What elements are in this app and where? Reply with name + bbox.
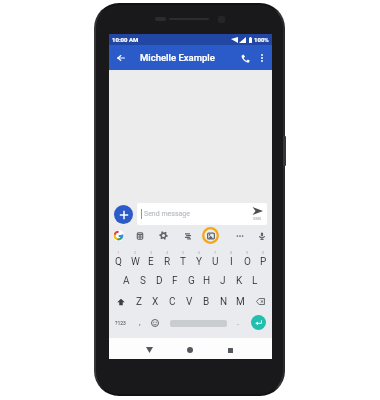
staticText: E [148,256,154,268]
staticText: Send message [144,210,190,218]
staticText: 9 [246,250,249,255]
staticText: ?123 [115,320,126,326]
button[interactable]: More options [256,52,268,64]
button[interactable]: Backspace [249,291,271,312]
button[interactable]: Home [182,342,198,358]
button[interactable]: Translate [181,229,194,242]
staticText: O [244,256,251,268]
button[interactable]: Choose image [202,227,219,244]
button[interactable]: 1 [110,249,127,270]
button[interactable]: X [147,291,164,312]
button[interactable]: 8 [223,249,239,270]
staticText: Michelle Example [140,52,215,63]
staticText: L [252,275,258,287]
staticText: J [220,275,226,287]
staticText: P [260,256,267,268]
button[interactable]: Settings [157,229,170,242]
button[interactable]: 4 [159,249,175,270]
button[interactable]: ?123 [111,315,130,330]
staticText: T [180,256,186,268]
staticText: 2 [134,250,137,255]
staticText: C [169,296,176,308]
button[interactable]: D [151,270,167,291]
button[interactable]: 0 [255,249,271,270]
staticText: K [236,275,243,287]
staticText: N [220,296,228,308]
button[interactable]: C [164,291,181,312]
button[interactable]: Voice input [255,229,268,242]
button[interactable]: A [118,270,135,291]
staticText: 10:00 AM [112,36,139,43]
staticText: 100% [254,36,269,43]
staticText: S [140,275,146,287]
staticText: X [152,296,159,308]
button[interactable]: B [198,291,215,312]
button[interactable]: Back [114,51,128,65]
button[interactable]: Call [238,51,252,65]
button[interactable]: H [199,270,215,291]
staticText: 1 [117,250,120,255]
button[interactable]: 7 [207,249,223,270]
button[interactable]: . [232,315,244,330]
staticText: W [131,256,140,268]
button[interactable]: S [135,270,151,291]
button[interactable]: 6 [191,249,207,270]
button[interactable]: M [232,291,249,312]
staticText: Z [136,296,142,308]
staticText: 7 [214,250,217,255]
staticText: , [139,318,141,327]
button[interactable]: Send SMS [252,207,263,221]
staticText: H [203,275,211,287]
staticText: 8 [230,250,233,255]
button[interactable]: L [247,270,263,291]
button[interactable]: Send message [137,203,267,225]
staticText: 3 [150,250,153,255]
button[interactable]: Recents [222,342,238,358]
staticText: U [212,256,219,268]
staticText: 6 [198,250,201,255]
staticText: M [236,296,245,308]
button[interactable]: K [231,270,247,291]
button[interactable]: 9 [239,249,255,270]
staticText: A [123,275,130,287]
button[interactable]: N [215,291,232,312]
staticText: 4 [166,250,169,255]
button[interactable]: Enter [251,315,266,330]
button[interactable]: 2 [127,249,143,270]
staticText: Q [115,256,122,268]
staticText: B [203,296,210,308]
button[interactable]: Emoji [148,315,161,330]
button[interactable]: F [167,270,183,291]
staticText: I [230,256,233,268]
staticText: F [172,275,178,287]
button[interactable]: Space [170,316,227,330]
staticText: 0 [262,250,265,255]
button[interactable]: More [233,229,246,242]
button[interactable]: , [133,315,146,330]
button[interactable]: Z [131,291,147,312]
staticText: SMS [253,216,262,221]
button[interactable]: 5 [175,249,191,270]
button[interactable]: Shift [110,291,131,312]
button[interactable]: Back [141,342,157,358]
staticText: G [188,275,195,287]
staticText: D [156,275,163,287]
button[interactable]: Google search [112,229,125,242]
button[interactable]: 3 [143,249,159,270]
staticText: 5 [182,250,185,255]
staticText: R [164,256,171,268]
staticText: . [237,318,240,327]
button[interactable]: G [183,270,199,291]
button[interactable]: Clipboard [133,229,146,242]
button[interactable]: J [215,270,231,291]
staticText: Y [196,256,203,268]
button[interactable]: V [181,291,198,312]
staticText: V [186,296,193,308]
button[interactable]: Add attachment [114,205,133,224]
